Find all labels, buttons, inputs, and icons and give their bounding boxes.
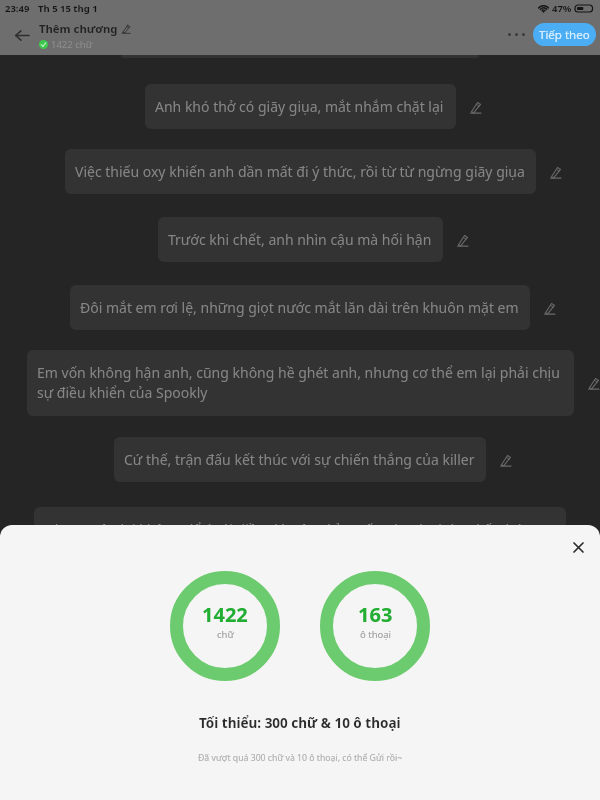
staticText: 163 xyxy=(358,601,393,628)
staticText: Anh khó thở có giãy giụa, mắt nhắm chặt … xyxy=(155,97,444,116)
button[interactable]: Sửa xyxy=(544,161,566,183)
staticText: 47% xyxy=(552,2,572,15)
staticText: Tiếp theo xyxy=(539,27,590,43)
staticText: Th 5 15 thg 1 xyxy=(38,2,98,15)
staticText: Cứ thế, trận đấu kết thúc với sự chiến t… xyxy=(124,450,475,469)
button[interactable]: Sửa xyxy=(582,372,600,394)
button[interactable]: Đóng xyxy=(564,533,592,561)
staticText: Tối thiểu: 300 chữ & 10 ô thoại xyxy=(199,714,401,732)
button[interactable]: Thêm tùy chọn xyxy=(503,21,529,47)
button[interactable]: Đôi mắt em rơi lệ, những giọt nước mắt l… xyxy=(70,285,530,330)
button[interactable]: Nhưng cậu lại không để ý tới điều đó, cậ… xyxy=(34,507,566,573)
staticText: 23:49 xyxy=(5,2,30,15)
button[interactable]: Em vốn không hận anh, cũng không hề ghét… xyxy=(27,350,574,416)
staticText: 1422 chữ xyxy=(51,38,93,51)
staticText: Đã vượt quá 300 chữ và 10 ô thoại, có th… xyxy=(198,752,403,764)
staticText: chữ xyxy=(217,628,234,641)
staticText: Thêm chương xyxy=(39,21,118,36)
staticText: Em vốn không hận anh, cũng không hề ghét… xyxy=(37,363,564,403)
staticText: Trước khi chết, anh nhìn cậu mà hối hận xyxy=(168,230,432,249)
button[interactable]: Sửa xyxy=(494,449,516,471)
button[interactable]: Tiếp theo xyxy=(533,23,596,46)
staticText: Việc thiếu oxy khiến anh dần mất đi ý th… xyxy=(75,162,525,181)
button[interactable]: Trước khi chết, anh nhìn cậu mà hối hận xyxy=(158,217,443,262)
button[interactable]: Sửa xyxy=(451,229,473,251)
button[interactable]: Quay lại xyxy=(6,19,38,51)
staticText: 1422 xyxy=(202,601,248,628)
staticText: Nhưng cậu lại không để ý tới điều đó, cậ… xyxy=(44,520,556,560)
button[interactable]: Sửa xyxy=(574,529,596,551)
button[interactable]: Cứ thế, trận đấu kết thúc với sự chiến t… xyxy=(114,437,486,482)
button[interactable]: Anh khó thở có giãy giụa, mắt nhắm chặt … xyxy=(145,84,456,129)
button[interactable]: Việc thiếu oxy khiến anh dần mất đi ý th… xyxy=(65,149,536,194)
staticText: ô thoại xyxy=(360,628,392,641)
button[interactable]: Sửa xyxy=(538,297,560,319)
button[interactable]: Sửa xyxy=(464,96,486,118)
staticText: Đôi mắt em rơi lệ, những giọt nước mắt l… xyxy=(80,298,519,317)
